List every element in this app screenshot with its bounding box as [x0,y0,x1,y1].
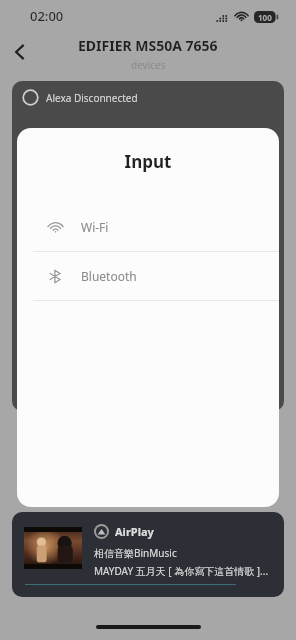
staticText: Input [17,150,279,173]
button[interactable]: AirPlay [12,512,284,597]
staticText: Alexa Disconnected [46,91,138,105]
staticText: EDIFIER MS50A 7656 [78,36,218,55]
staticText: 相信音樂BinMusic [94,546,177,560]
button[interactable]: Alexa Disconnected [22,89,138,106]
staticText: 02:00 [30,7,64,25]
button[interactable]: Bluetooth [17,252,279,300]
staticText: Wi-Fi [81,219,109,235]
button[interactable]: Wi-Fi [17,203,279,251]
staticText: AirPlay [115,524,154,539]
staticText: 100 [258,12,272,23]
staticText: MAYDAY 五月天 [ 為你寫下這首情歌 ]... [94,564,274,578]
staticText: devices [131,58,166,72]
button[interactable]: Back [4,36,36,68]
staticText: Bluetooth [81,268,137,284]
